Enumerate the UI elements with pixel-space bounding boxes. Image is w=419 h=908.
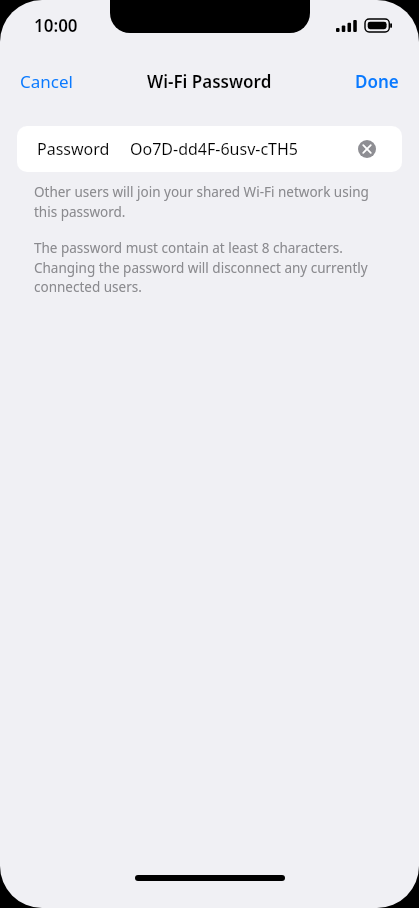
button[interactable]: Cancel bbox=[0, 62, 85, 101]
staticText: Cancel bbox=[20, 70, 73, 93]
button[interactable]: Done bbox=[343, 62, 419, 101]
button[interactable]: Password bbox=[17, 126, 402, 172]
button[interactable]: Clear text bbox=[351, 133, 383, 165]
staticText: Done bbox=[355, 70, 399, 93]
staticText: Oo7D-dd4F-6usv-cTH5 bbox=[130, 138, 299, 160]
staticText: The password must contain at least 8 cha… bbox=[34, 239, 385, 296]
staticText: Other users will join your shared Wi-Fi … bbox=[34, 183, 385, 221]
staticText: Wi-Fi Password bbox=[147, 70, 272, 93]
staticText: 10:00 bbox=[34, 14, 78, 37]
staticText: Password bbox=[37, 138, 110, 160]
